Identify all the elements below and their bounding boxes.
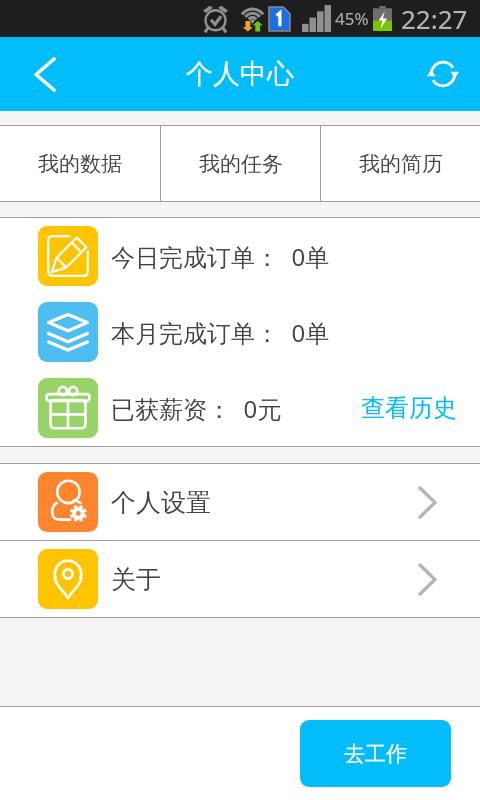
staticText: 22:27 [401, 1, 468, 36]
staticText: 本月完成订单： 0单 [111, 316, 330, 349]
button[interactable]: 个人设置 [0, 464, 480, 540]
staticText: 45% [335, 7, 369, 30]
staticText: 今日完成订单： 0单 [111, 240, 330, 273]
staticText: 我的数据 [38, 151, 122, 177]
button[interactable]: 我的数据 [0, 126, 160, 201]
button[interactable]: 去工作 [300, 720, 451, 787]
staticText: 关于 [111, 564, 161, 595]
button[interactable]: 已获薪资： 0元 [0, 370, 480, 446]
button[interactable]: 我的任务 [161, 126, 320, 201]
button[interactable]: 我的简历 [321, 126, 480, 201]
button[interactable]: Refresh [406, 37, 480, 111]
staticText: 已获薪资： 0元 [111, 392, 282, 425]
staticText: 去工作 [344, 741, 407, 767]
button[interactable]: 关于 [0, 541, 480, 617]
staticText: 个人中心 [186, 57, 294, 91]
staticText: 我的任务 [199, 151, 283, 177]
button[interactable]: 查看历史 [355, 383, 463, 433]
staticText: 查看历史 [361, 393, 457, 423]
button[interactable]: 今日完成订单： 0单 [0, 218, 480, 294]
button[interactable]: 本月完成订单： 0单 [0, 294, 480, 370]
staticText: 个人设置 [111, 487, 211, 518]
button[interactable]: Back [0, 37, 90, 111]
staticText: 我的简历 [359, 151, 443, 177]
